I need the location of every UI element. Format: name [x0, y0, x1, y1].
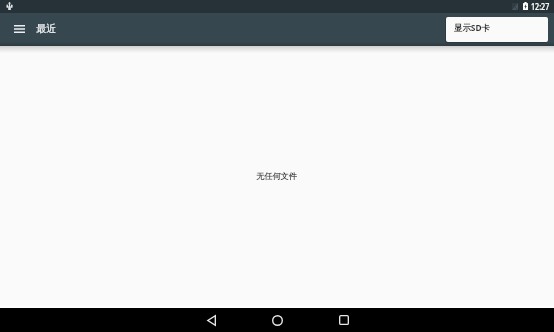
button[interactable]: 显示SD卡	[446, 17, 548, 42]
staticText: 最近	[36, 22, 57, 35]
staticText: 显示SD卡	[454, 22, 490, 33]
button[interactable]: Open navigation drawer	[6, 16, 32, 42]
button[interactable]: Home	[260, 308, 294, 332]
button[interactable]: Back	[194, 308, 228, 332]
button[interactable]: Recent apps	[327, 308, 361, 332]
staticText: 无任何文件	[256, 171, 297, 181]
staticText: 12:27	[531, 1, 550, 13]
